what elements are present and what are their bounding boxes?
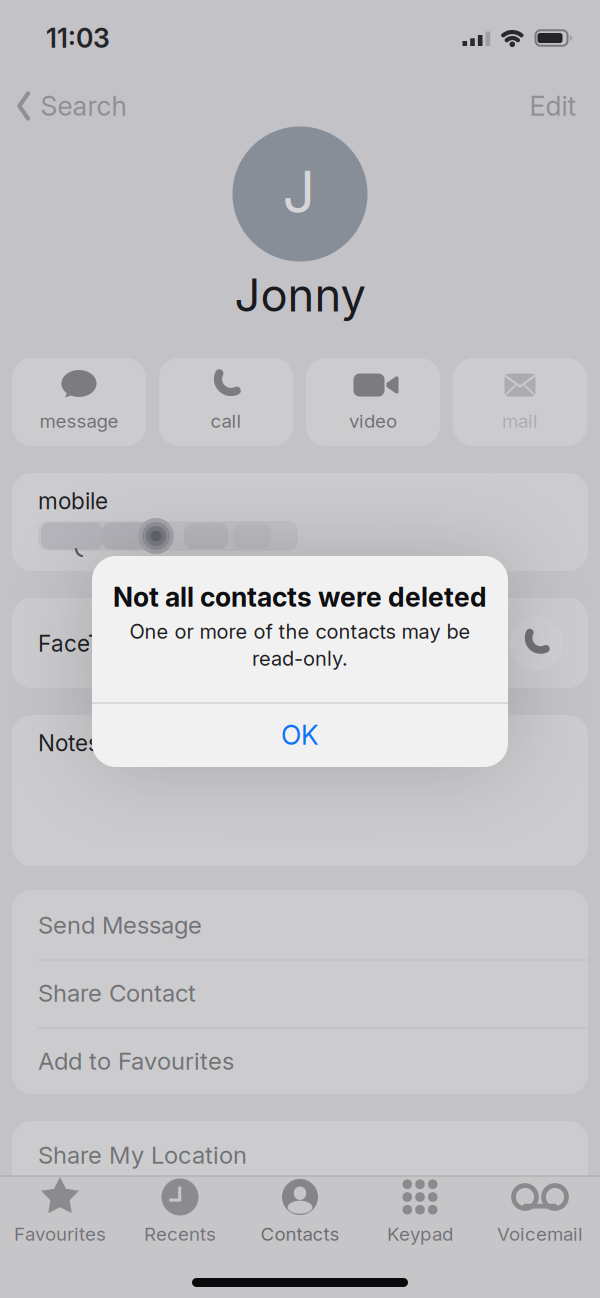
staticText: Voicemail <box>497 1223 583 1245</box>
staticText: mobile <box>38 488 108 514</box>
staticText: J <box>282 158 315 226</box>
button[interactable]: FaceTime audio call <box>509 616 563 670</box>
button[interactable]: Back to Search <box>17 90 126 122</box>
button[interactable]: Keypad <box>365 1175 475 1259</box>
staticText: mail <box>502 410 538 432</box>
staticText: Send Message <box>38 911 202 939</box>
staticText: Keypad <box>387 1223 453 1245</box>
button[interactable]: Add to Favourites <box>12 1027 588 1095</box>
button[interactable]: FaceTime <box>12 598 588 688</box>
button[interactable]: video <box>306 358 440 446</box>
button[interactable]: Contacts <box>245 1175 355 1259</box>
button[interactable]: mail <box>453 358 587 446</box>
button[interactable]: call <box>159 358 293 446</box>
staticText: message <box>39 410 118 432</box>
button[interactable]: mobile number <box>12 473 588 571</box>
staticText: call <box>210 410 241 432</box>
staticText: Jonny <box>234 268 365 322</box>
button[interactable]: Send Message <box>12 891 588 959</box>
button[interactable]: Share My Location <box>12 1123 588 1187</box>
staticText: Not all contacts were deleted <box>113 581 487 613</box>
button[interactable]: Edit <box>529 90 576 122</box>
staticText: Contacts <box>260 1223 339 1245</box>
staticText: video <box>349 410 397 432</box>
staticText: Search <box>40 90 126 122</box>
staticText: Share My Location <box>38 1141 247 1169</box>
staticText: Edit <box>529 90 576 122</box>
staticText: FaceTime <box>38 630 140 657</box>
button[interactable]: Voicemail <box>485 1175 595 1259</box>
staticText: Notes <box>38 730 100 756</box>
staticText: 11:03 <box>46 22 110 54</box>
staticText: read-only. <box>252 647 348 670</box>
button[interactable]: OK <box>92 703 508 766</box>
staticText: Recents <box>144 1223 216 1245</box>
button[interactable]: Favourites <box>5 1175 115 1259</box>
staticText: Add to Favourites <box>38 1047 234 1075</box>
button[interactable]: Recents <box>125 1175 235 1259</box>
staticText: OK <box>281 719 319 751</box>
button[interactable]: message <box>12 358 146 446</box>
staticText: Share Contact <box>38 979 196 1007</box>
staticText: Favourites <box>14 1223 106 1245</box>
button[interactable]: Share Contact <box>12 959 588 1027</box>
staticText: One or more of the contacts may be <box>129 620 470 643</box>
